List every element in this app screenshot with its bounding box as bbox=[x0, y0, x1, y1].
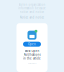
staticText: Notice and notice bbox=[19, 16, 44, 19]
staticText: notice and notice bbox=[19, 10, 44, 14]
staticText: in the article bbox=[23, 57, 41, 60]
staticText: information because bbox=[18, 6, 46, 10]
staticText: Most Open bbox=[24, 49, 39, 53]
staticText: Stolen organization bbox=[18, 3, 45, 6]
staticText: Notifications bbox=[23, 53, 40, 56]
staticText: Open bbox=[28, 42, 36, 46]
button[interactable]: Open bbox=[23, 42, 41, 47]
staticText: or this a blurb bbox=[27, 63, 36, 64]
